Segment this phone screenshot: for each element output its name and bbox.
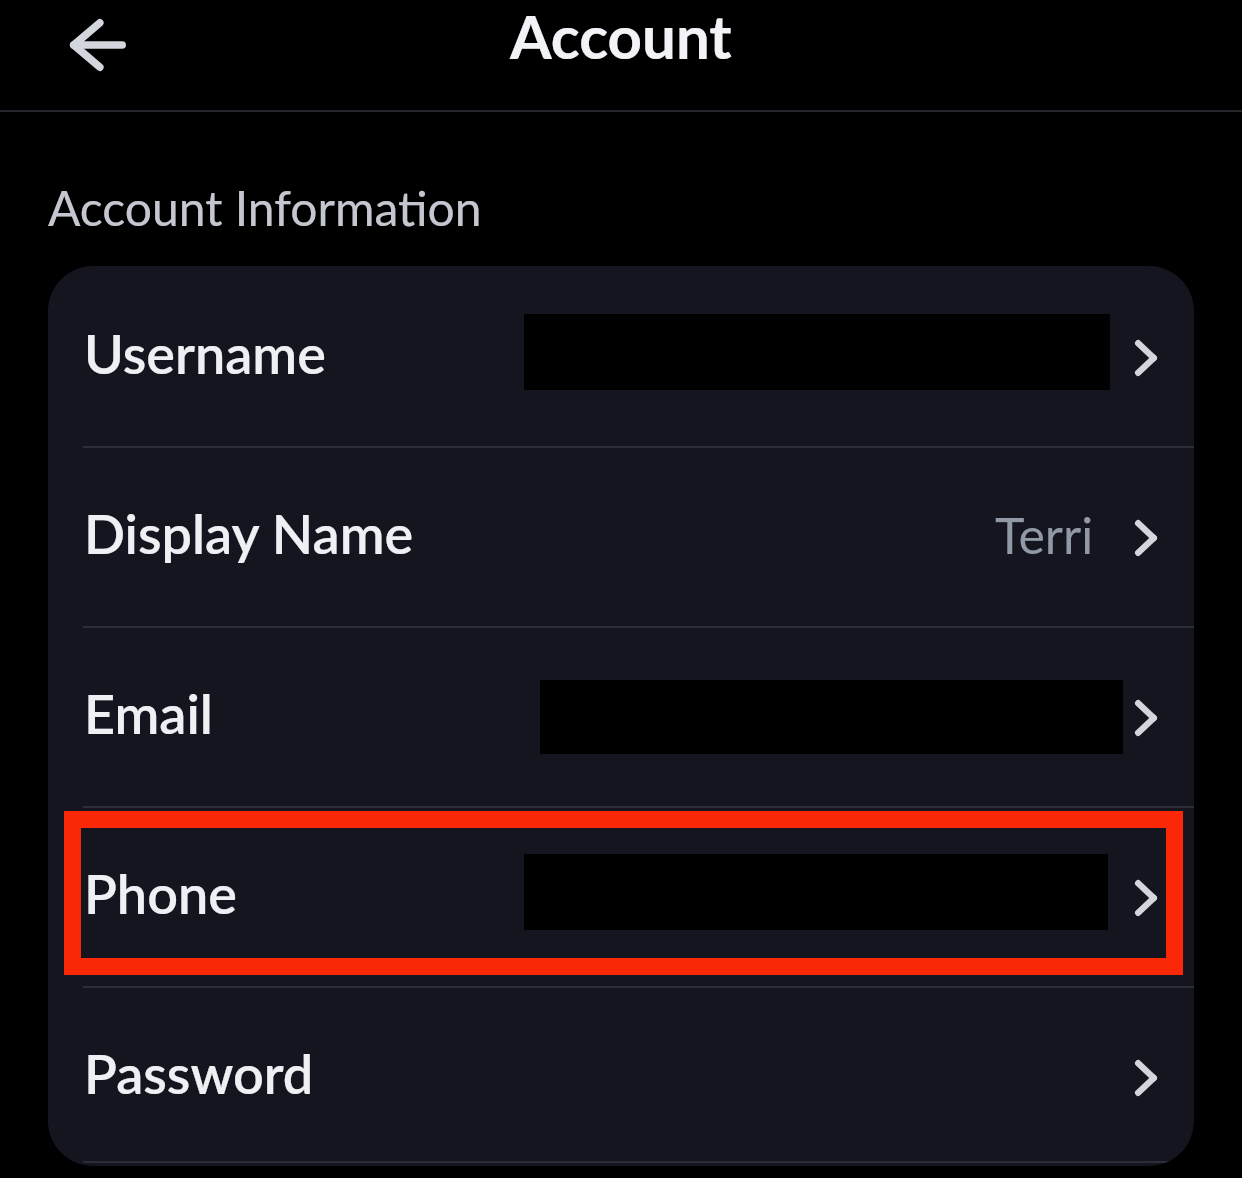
staticText: Phone [84,861,237,926]
staticText: Account [510,0,732,72]
staticText: Password [84,1041,314,1106]
staticText: Account Information [48,179,482,237]
button[interactable]: Username [48,266,1194,446]
button[interactable]: Password [48,986,1194,1166]
staticText: Email [84,681,213,746]
staticText: Terri [995,505,1094,565]
staticText: Username [84,321,326,386]
button[interactable]: Display Name [48,446,1194,626]
button[interactable]: Back [55,7,141,83]
button[interactable]: Phone [48,806,1194,986]
button[interactable]: Email [48,626,1194,806]
staticText: Display Name [84,501,414,566]
